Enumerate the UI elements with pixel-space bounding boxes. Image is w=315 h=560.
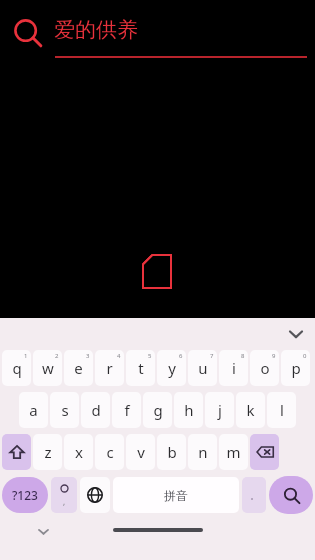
- staticText: o: [260, 358, 270, 378]
- staticText: c: [106, 442, 114, 462]
- staticText: 3: [86, 352, 90, 360]
- staticText: n: [198, 442, 208, 462]
- staticText: 5: [148, 352, 152, 360]
- staticText: 6: [179, 352, 183, 360]
- staticText: 2: [55, 352, 59, 360]
- button[interactable]: Change language: [80, 477, 110, 513]
- button[interactable]: d: [81, 392, 110, 428]
- button[interactable]: p: [281, 350, 310, 386]
- button[interactable]: v: [126, 434, 155, 470]
- staticText: 8: [241, 352, 245, 360]
- button[interactable]: i: [219, 350, 248, 386]
- button[interactable]: c: [95, 434, 124, 470]
- button[interactable]: e: [64, 350, 93, 386]
- button[interactable]: 拼音: [113, 477, 239, 513]
- staticText: m: [226, 442, 241, 462]
- staticText: i: [232, 358, 236, 378]
- staticText: 0: [303, 352, 307, 360]
- staticText: 爱的供养: [54, 17, 138, 43]
- staticText: 。: [250, 490, 259, 501]
- button[interactable]: y: [157, 350, 186, 386]
- button[interactable]: Search: [8, 14, 48, 54]
- button[interactable]: a: [19, 392, 48, 428]
- staticText: p: [291, 358, 301, 378]
- button[interactable]: m: [219, 434, 248, 470]
- staticText: v: [137, 442, 145, 462]
- staticText: y: [168, 358, 176, 378]
- staticText: 4: [117, 352, 121, 360]
- staticText: 1: [24, 352, 28, 360]
- staticText: b: [167, 442, 177, 462]
- button[interactable]: Period: [242, 477, 266, 513]
- staticText: ?123: [12, 487, 38, 503]
- staticText: a: [29, 400, 38, 420]
- button[interactable]: k: [236, 392, 265, 428]
- button[interactable]: t: [126, 350, 155, 386]
- staticText: t: [138, 358, 144, 378]
- staticText: 7: [210, 352, 214, 360]
- button[interactable]: w: [33, 350, 62, 386]
- button[interactable]: s: [50, 392, 79, 428]
- staticText: h: [184, 400, 194, 420]
- button[interactable]: l: [267, 392, 296, 428]
- button[interactable]: n: [188, 434, 217, 470]
- staticText: d: [91, 400, 101, 420]
- button[interactable]: z: [33, 434, 62, 470]
- button[interactable]: Back: [34, 522, 52, 540]
- button[interactable]: g: [143, 392, 172, 428]
- button[interactable]: b: [157, 434, 186, 470]
- button[interactable]: Shift: [2, 434, 31, 470]
- staticText: s: [61, 400, 69, 420]
- staticText: f: [124, 400, 130, 420]
- staticText: u: [198, 358, 208, 378]
- button[interactable]: q: [2, 350, 31, 386]
- staticText: x: [75, 442, 83, 462]
- button[interactable]: x: [64, 434, 93, 470]
- button[interactable]: f: [112, 392, 141, 428]
- staticText: ,: [63, 496, 66, 507]
- staticText: k: [246, 400, 255, 420]
- button[interactable]: j: [205, 392, 234, 428]
- button[interactable]: u: [188, 350, 217, 386]
- button[interactable]: Hide keyboard: [284, 322, 308, 346]
- staticText: w: [42, 358, 54, 378]
- staticText: q: [12, 358, 22, 378]
- staticText: 9: [272, 352, 276, 360]
- button[interactable]: h: [174, 392, 203, 428]
- staticText: e: [74, 358, 83, 378]
- button[interactable]: Backspace: [250, 434, 279, 470]
- staticText: l: [280, 400, 284, 420]
- staticText: g: [153, 400, 163, 420]
- button[interactable]: ?123: [2, 477, 48, 513]
- staticText: 拼音: [164, 488, 188, 503]
- staticText: z: [44, 442, 52, 462]
- button[interactable]: Search: [269, 476, 313, 514]
- button[interactable]: Emoji: [51, 477, 77, 513]
- staticText: j: [218, 400, 222, 420]
- staticText: r: [106, 358, 113, 378]
- button[interactable]: o: [250, 350, 279, 386]
- button[interactable]: r: [95, 350, 124, 386]
